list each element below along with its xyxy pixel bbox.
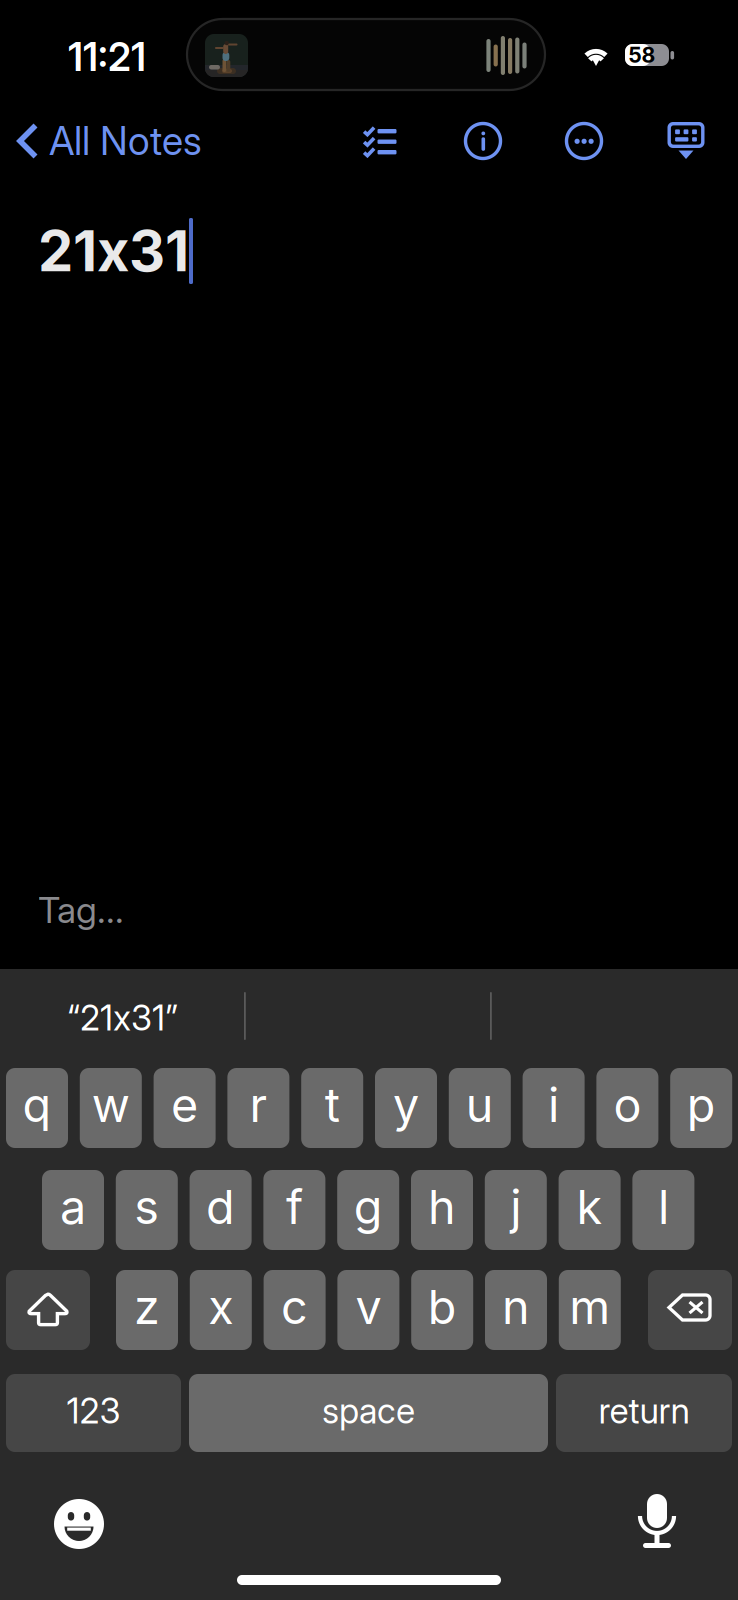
button[interactable]: f bbox=[263, 1170, 325, 1250]
staticText: x bbox=[208, 1279, 233, 1335]
button[interactable]: q bbox=[6, 1068, 68, 1148]
button[interactable]: t bbox=[301, 1068, 363, 1148]
button[interactable]: i bbox=[523, 1068, 585, 1148]
button[interactable]: More options bbox=[554, 123, 614, 159]
staticText: return bbox=[598, 1390, 689, 1432]
button[interactable]: z bbox=[116, 1270, 178, 1350]
button[interactable]: y bbox=[375, 1068, 437, 1148]
button[interactable]: v bbox=[337, 1270, 399, 1350]
staticText: q bbox=[22, 1077, 51, 1133]
button[interactable]: Shift bbox=[6, 1270, 90, 1350]
staticText: 31 bbox=[129, 217, 189, 285]
button[interactable]: m bbox=[559, 1270, 621, 1350]
staticText: c bbox=[281, 1279, 308, 1335]
button[interactable]: 123 bbox=[6, 1374, 181, 1452]
staticText: k bbox=[577, 1179, 603, 1235]
button[interactable]: c bbox=[264, 1270, 326, 1350]
button[interactable]: Delete bbox=[648, 1270, 732, 1350]
button[interactable]: n bbox=[485, 1270, 547, 1350]
staticText: z bbox=[134, 1279, 160, 1335]
button[interactable]: Tag... bbox=[38, 890, 258, 930]
button[interactable]: a bbox=[42, 1170, 104, 1250]
staticText: 58 bbox=[628, 42, 655, 68]
button[interactable]: d bbox=[190, 1170, 252, 1250]
staticText: v bbox=[355, 1279, 381, 1335]
staticText: space bbox=[322, 1390, 415, 1432]
button[interactable]: j bbox=[485, 1170, 547, 1250]
button[interactable]: Note information bbox=[453, 123, 513, 159]
staticText: y bbox=[393, 1077, 419, 1133]
button[interactable]: w bbox=[80, 1068, 142, 1148]
button[interactable]: l bbox=[632, 1170, 694, 1250]
staticText: All Notes bbox=[49, 118, 202, 164]
staticText: e bbox=[171, 1077, 198, 1133]
button[interactable]: u bbox=[449, 1068, 511, 1148]
button[interactable]: “21 bbox=[2, 980, 243, 1056]
staticText: r bbox=[249, 1077, 267, 1133]
button[interactable]: s bbox=[116, 1170, 178, 1250]
staticText: u bbox=[466, 1077, 494, 1133]
button[interactable]: Emoji keyboard bbox=[54, 1499, 104, 1549]
staticText: b bbox=[428, 1279, 457, 1335]
staticText: d bbox=[206, 1179, 235, 1235]
button[interactable]: o bbox=[596, 1068, 658, 1148]
staticText: m bbox=[569, 1279, 610, 1335]
button[interactable]: All Notes bbox=[16, 113, 246, 169]
staticText: i bbox=[548, 1077, 559, 1133]
button[interactable]: h bbox=[411, 1170, 473, 1250]
button[interactable]: space bbox=[189, 1374, 548, 1452]
button[interactable]: Dictation bbox=[631, 1494, 683, 1550]
staticText: h bbox=[428, 1179, 456, 1235]
button[interactable]: Checklist bbox=[350, 124, 410, 158]
staticText: g bbox=[354, 1179, 383, 1235]
staticText: o bbox=[613, 1077, 641, 1133]
button[interactable]: x bbox=[190, 1270, 252, 1350]
staticText: Tag... bbox=[38, 888, 124, 932]
staticText: 31” bbox=[131, 997, 178, 1039]
staticText: x bbox=[97, 217, 129, 285]
button[interactable]: r bbox=[227, 1068, 289, 1148]
button[interactable]: b bbox=[411, 1270, 473, 1350]
staticText: l bbox=[658, 1179, 669, 1235]
button[interactable]: Hide keyboard bbox=[656, 122, 716, 160]
staticText: j bbox=[510, 1179, 521, 1235]
staticText: w bbox=[92, 1077, 130, 1133]
button[interactable]: k bbox=[559, 1170, 621, 1250]
staticText: 11:21 bbox=[68, 34, 146, 80]
staticText: t bbox=[325, 1077, 340, 1133]
staticText: n bbox=[502, 1279, 530, 1335]
staticText: 21 bbox=[38, 217, 97, 285]
button[interactable]: p bbox=[670, 1068, 732, 1148]
staticText: 123 bbox=[66, 1390, 120, 1432]
staticText: s bbox=[134, 1179, 159, 1235]
button[interactable]: g bbox=[337, 1170, 399, 1250]
staticText: “21 bbox=[67, 997, 113, 1039]
staticText: f bbox=[286, 1179, 303, 1235]
staticText: p bbox=[687, 1077, 716, 1133]
button[interactable]: e bbox=[154, 1068, 216, 1148]
staticText: a bbox=[60, 1179, 86, 1235]
button[interactable]: return bbox=[556, 1374, 732, 1452]
staticText: x bbox=[113, 997, 131, 1039]
